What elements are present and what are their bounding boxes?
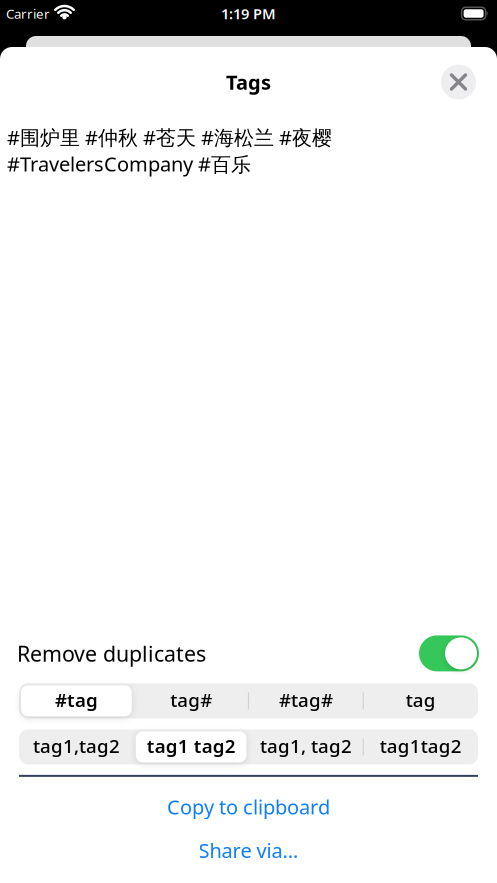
button[interactable]: tag1, tag2 <box>248 729 363 764</box>
staticText: #tag# <box>279 687 333 712</box>
staticText: #围炉里 #仲秋 #苍天 #海松兰 #夜樱 #TravelersCompany … <box>7 124 332 177</box>
button[interactable]: Share via… <box>198 837 298 863</box>
staticText: Tags <box>226 69 271 95</box>
staticText: #tag <box>55 687 98 712</box>
button[interactable]: Remove duplicates <box>419 635 479 671</box>
staticText: Share via… <box>198 837 298 863</box>
staticText: tag1, tag2 <box>260 733 352 758</box>
staticText: Carrier <box>6 5 50 22</box>
button[interactable]: tag1,tag2 <box>19 729 134 764</box>
button[interactable]: tag# <box>134 683 249 718</box>
staticText: 1:19 PM <box>221 4 276 23</box>
staticText: tag1 tag2 <box>147 733 236 758</box>
button[interactable]: Copy to clipboard <box>167 793 330 820</box>
button[interactable]: tag <box>363 683 478 718</box>
staticText: tag1tag2 <box>380 733 462 758</box>
button[interactable]: tag1tag2 <box>363 729 478 764</box>
button[interactable]: #tag# <box>248 683 363 718</box>
staticText: tag1,tag2 <box>33 733 120 758</box>
button[interactable]: tag1 tag2 <box>134 729 249 764</box>
button[interactable]: #tag <box>19 683 134 718</box>
staticText: tag# <box>170 687 212 712</box>
staticText: tag <box>406 687 436 712</box>
staticText: Copy to clipboard <box>167 793 330 820</box>
button[interactable]: Close <box>441 64 476 99</box>
staticText: Remove duplicates <box>17 639 206 667</box>
